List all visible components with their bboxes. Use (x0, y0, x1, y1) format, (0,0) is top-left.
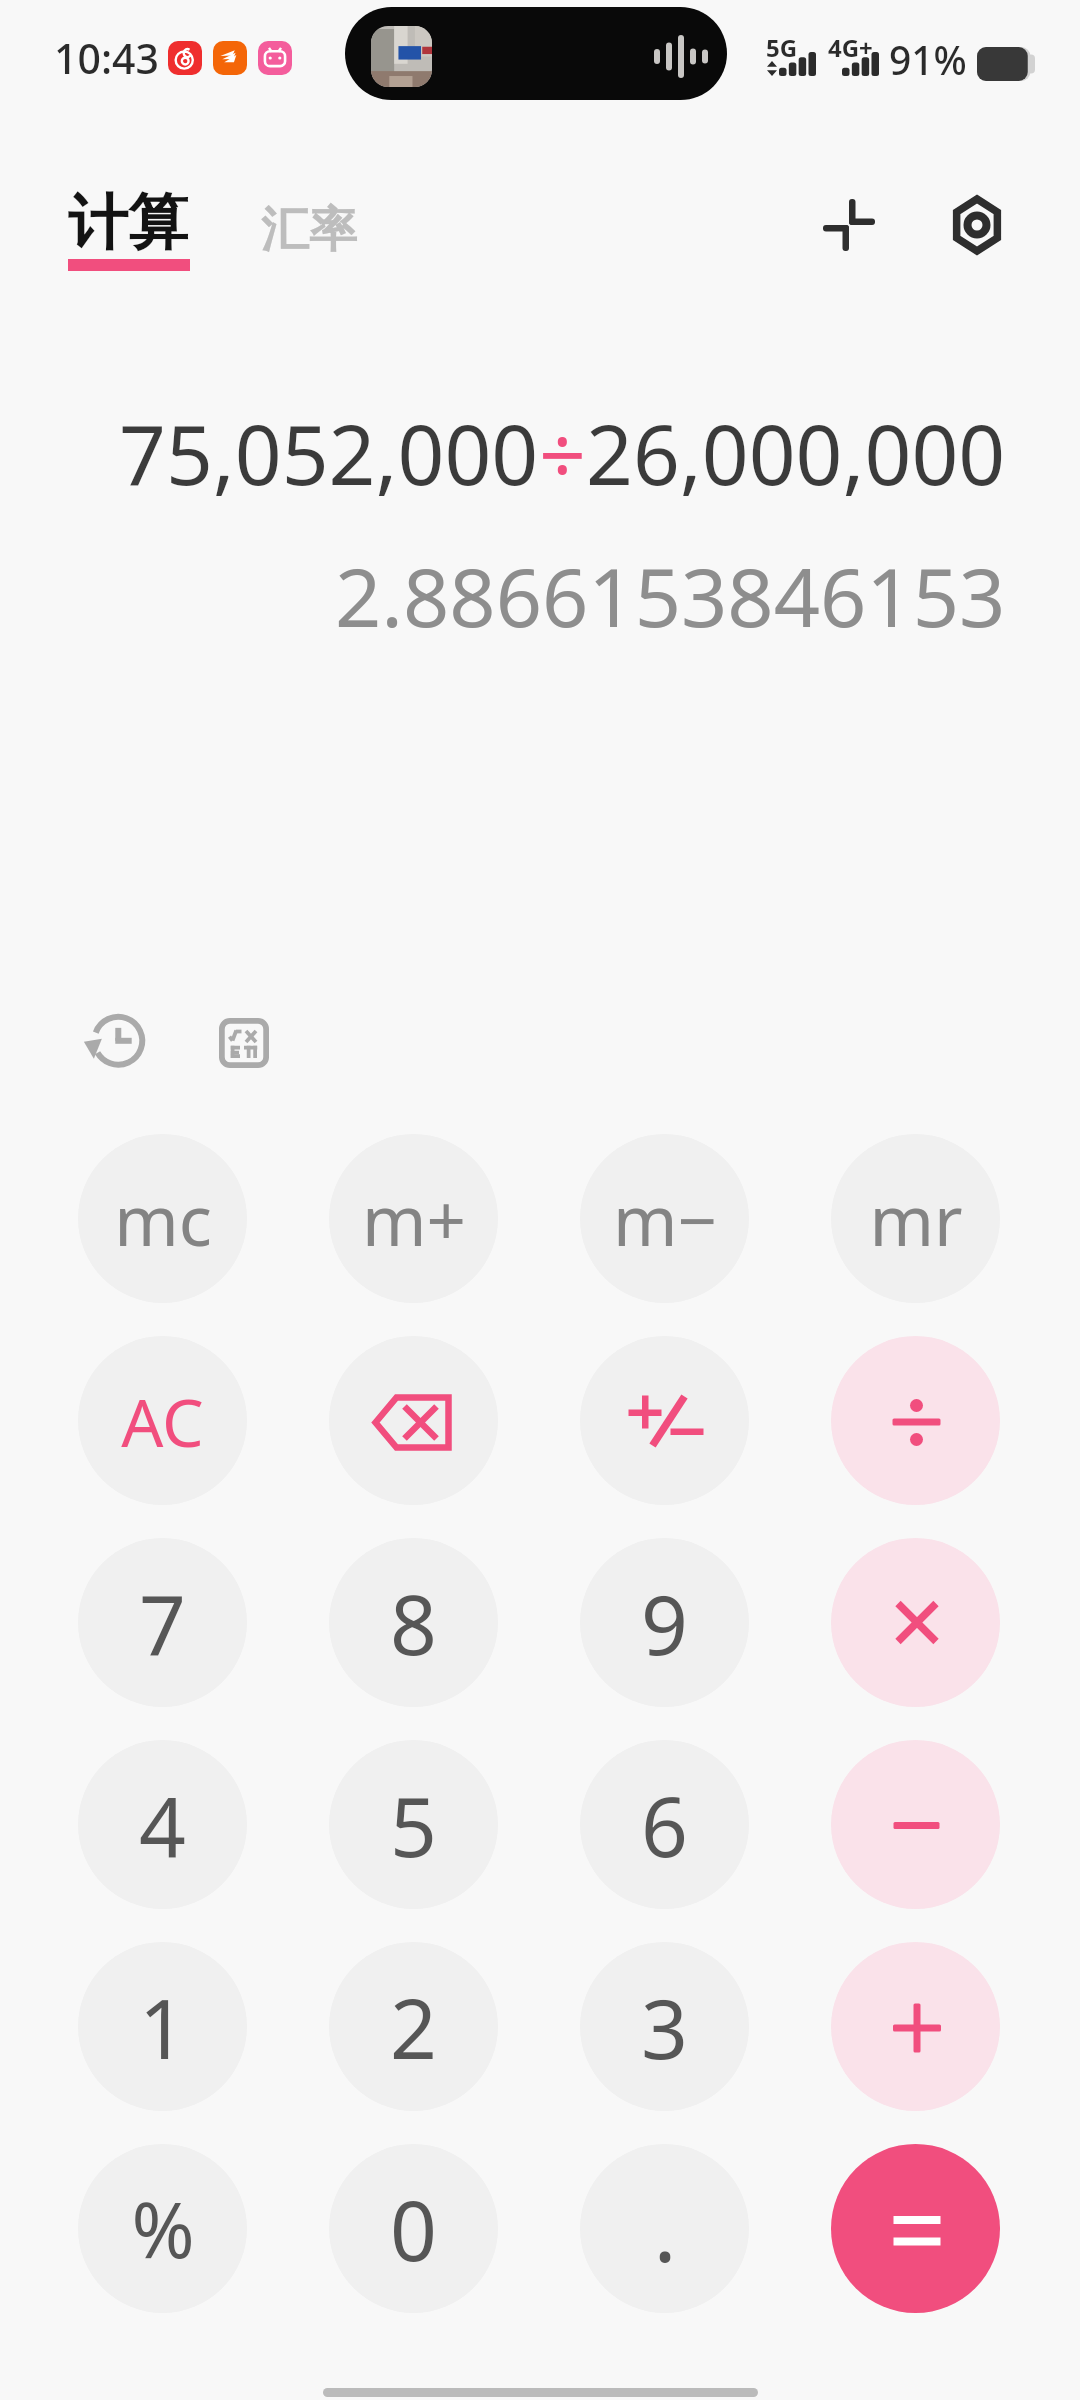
button[interactable]: AC (78, 1336, 247, 1505)
button[interactable]: 0 (329, 2144, 498, 2313)
button[interactable]: Settings (932, 180, 1022, 270)
button[interactable]: 9 (580, 1538, 749, 1707)
staticText: . (653, 2170, 677, 2287)
button[interactable]: Collapse (804, 180, 894, 270)
staticText: 0 (390, 2173, 437, 2285)
staticText: 5G (766, 31, 798, 64)
staticText: 26,000,000 (586, 397, 1006, 509)
staticText: 2.8866153846153 (335, 540, 1006, 650)
staticText: 10:43 (54, 30, 159, 86)
button[interactable]: . (580, 2144, 749, 2313)
staticText: 7 (139, 1567, 186, 1679)
button[interactable]: History (70, 998, 159, 1087)
button[interactable]: Scientific (199, 998, 288, 1087)
button[interactable]: 2 (329, 1942, 498, 2111)
staticText: 8 (390, 1567, 437, 1679)
button[interactable]: mc (78, 1134, 247, 1303)
button[interactable]: 6 (580, 1740, 749, 1909)
button[interactable]: 5 (329, 1740, 498, 1909)
button[interactable]: 7 (78, 1538, 247, 1707)
button[interactable]: m− (580, 1134, 749, 1303)
button[interactable]: % (78, 2144, 247, 2313)
staticText: 75,052,000 (119, 397, 539, 509)
staticText: 3 (641, 1971, 688, 2083)
button[interactable] (831, 2144, 1000, 2313)
staticText: ÷ (539, 397, 586, 509)
button[interactable] (831, 1538, 1000, 1707)
staticText: 4 (139, 1769, 186, 1881)
button[interactable]: 4 (78, 1740, 247, 1909)
staticText: % (131, 2177, 195, 2281)
button[interactable]: m+ (329, 1134, 498, 1303)
button[interactable] (831, 1336, 1000, 1505)
button[interactable]: mr (831, 1134, 1000, 1303)
button[interactable] (831, 1740, 1000, 1909)
button[interactable]: 3 (580, 1942, 749, 2111)
button[interactable]: 计算 (68, 185, 190, 273)
staticText: 4G+ (828, 31, 873, 64)
staticText: 5 (390, 1769, 437, 1881)
button[interactable] (329, 1336, 498, 1505)
staticText: 计算 (68, 185, 188, 261)
staticText: 6 (641, 1769, 688, 1881)
button[interactable]: 8 (329, 1538, 498, 1707)
staticText: 1 (139, 1971, 186, 2083)
button[interactable]: 1 (78, 1942, 247, 2111)
staticText: m+ (362, 1172, 466, 1266)
staticText: 2 (390, 1971, 437, 2083)
staticText: 9 (641, 1567, 688, 1679)
staticText: mc (114, 1172, 212, 1266)
button[interactable] (580, 1336, 749, 1505)
button[interactable]: 汇率 (261, 200, 357, 260)
staticText: AC (121, 1376, 204, 1466)
staticText: 汇率 (261, 200, 357, 260)
staticText: 91% (889, 33, 967, 86)
staticText: mr (869, 1172, 963, 1266)
button[interactable] (831, 1942, 1000, 2111)
staticText: m− (613, 1172, 717, 1266)
